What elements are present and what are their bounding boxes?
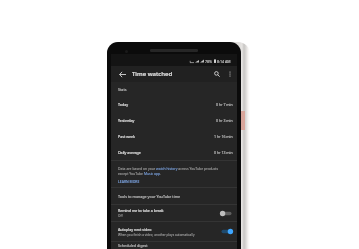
button[interactable]: Daily average xyxy=(111,144,237,160)
staticText: Daily average xyxy=(118,150,141,155)
button[interactable]: Yesterday xyxy=(111,112,237,128)
button[interactable]: Toggle off xyxy=(220,209,233,218)
staticText: 1 hr 16 min xyxy=(214,134,233,139)
staticText: LEARN MORE xyxy=(118,179,140,184)
staticText: Today xyxy=(118,102,128,107)
staticText: Stats xyxy=(118,87,127,92)
staticText: Autoplay next video xyxy=(118,227,152,232)
staticText: Scheduled digest xyxy=(118,243,148,248)
staticText: When you finish a video, another plays a… xyxy=(118,233,195,237)
button[interactable]: Toggle on xyxy=(220,227,233,236)
button[interactable]: Back xyxy=(116,68,128,80)
staticText: 0 hr 7 min xyxy=(216,102,233,107)
button[interactable]: Search xyxy=(211,68,223,80)
button[interactable]: Autoplay next video xyxy=(111,222,237,241)
staticText: Off xyxy=(118,214,123,218)
staticText: Remind me to take a break xyxy=(118,208,164,213)
button[interactable]: Remind me to take a break xyxy=(111,205,237,221)
staticText: 0 hr 13 min xyxy=(214,150,233,155)
button[interactable]: More options xyxy=(224,68,236,80)
staticText: Time watched xyxy=(132,70,173,78)
staticText: Tools to manage your YouTube time xyxy=(118,194,181,199)
staticText: Data are based on your watch history acr… xyxy=(118,166,225,176)
staticText: Yesterday xyxy=(118,118,135,123)
staticText: 0 hr 3 min xyxy=(216,118,233,123)
staticText: 78% xyxy=(205,59,213,64)
button[interactable]: Today xyxy=(111,96,237,112)
staticText: Past week xyxy=(118,134,135,139)
button[interactable]: Past week xyxy=(111,128,237,144)
staticText: 8:14 AM xyxy=(217,59,231,64)
button[interactable]: LEARN MORE xyxy=(118,179,140,184)
